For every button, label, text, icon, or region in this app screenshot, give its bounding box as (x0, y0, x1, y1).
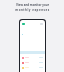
button[interactable] (20, 55, 45, 60)
staticText: View and monitor your (16, 3, 49, 7)
button[interactable]: Menu (22, 23, 25, 25)
staticText: monthly expenses (15, 8, 50, 12)
button[interactable] (20, 65, 45, 70)
button[interactable] (20, 60, 45, 65)
